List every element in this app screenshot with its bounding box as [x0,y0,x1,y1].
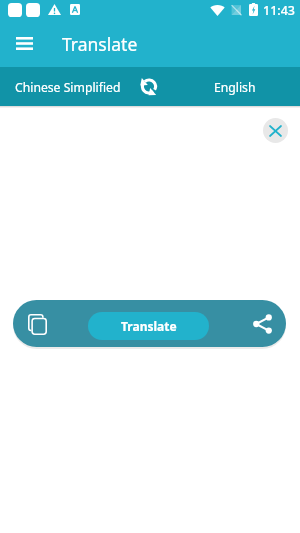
button[interactable]: Share [243,305,281,343]
staticText: Chinese Simplified [15,79,121,96]
button[interactable]: Chinese Simplified [4,68,132,107]
button[interactable]: Swap languages [132,70,165,103]
button[interactable]: Clear text [263,118,288,143]
staticText: Translate [62,32,138,56]
staticText: English [214,79,256,96]
button[interactable]: Copy [18,305,56,343]
button[interactable]: Open navigation menu [8,27,40,59]
button[interactable]: English [173,68,297,107]
button[interactable]: Translate [88,312,209,340]
staticText: 11:43 [263,2,296,19]
staticText: Translate [121,318,177,334]
